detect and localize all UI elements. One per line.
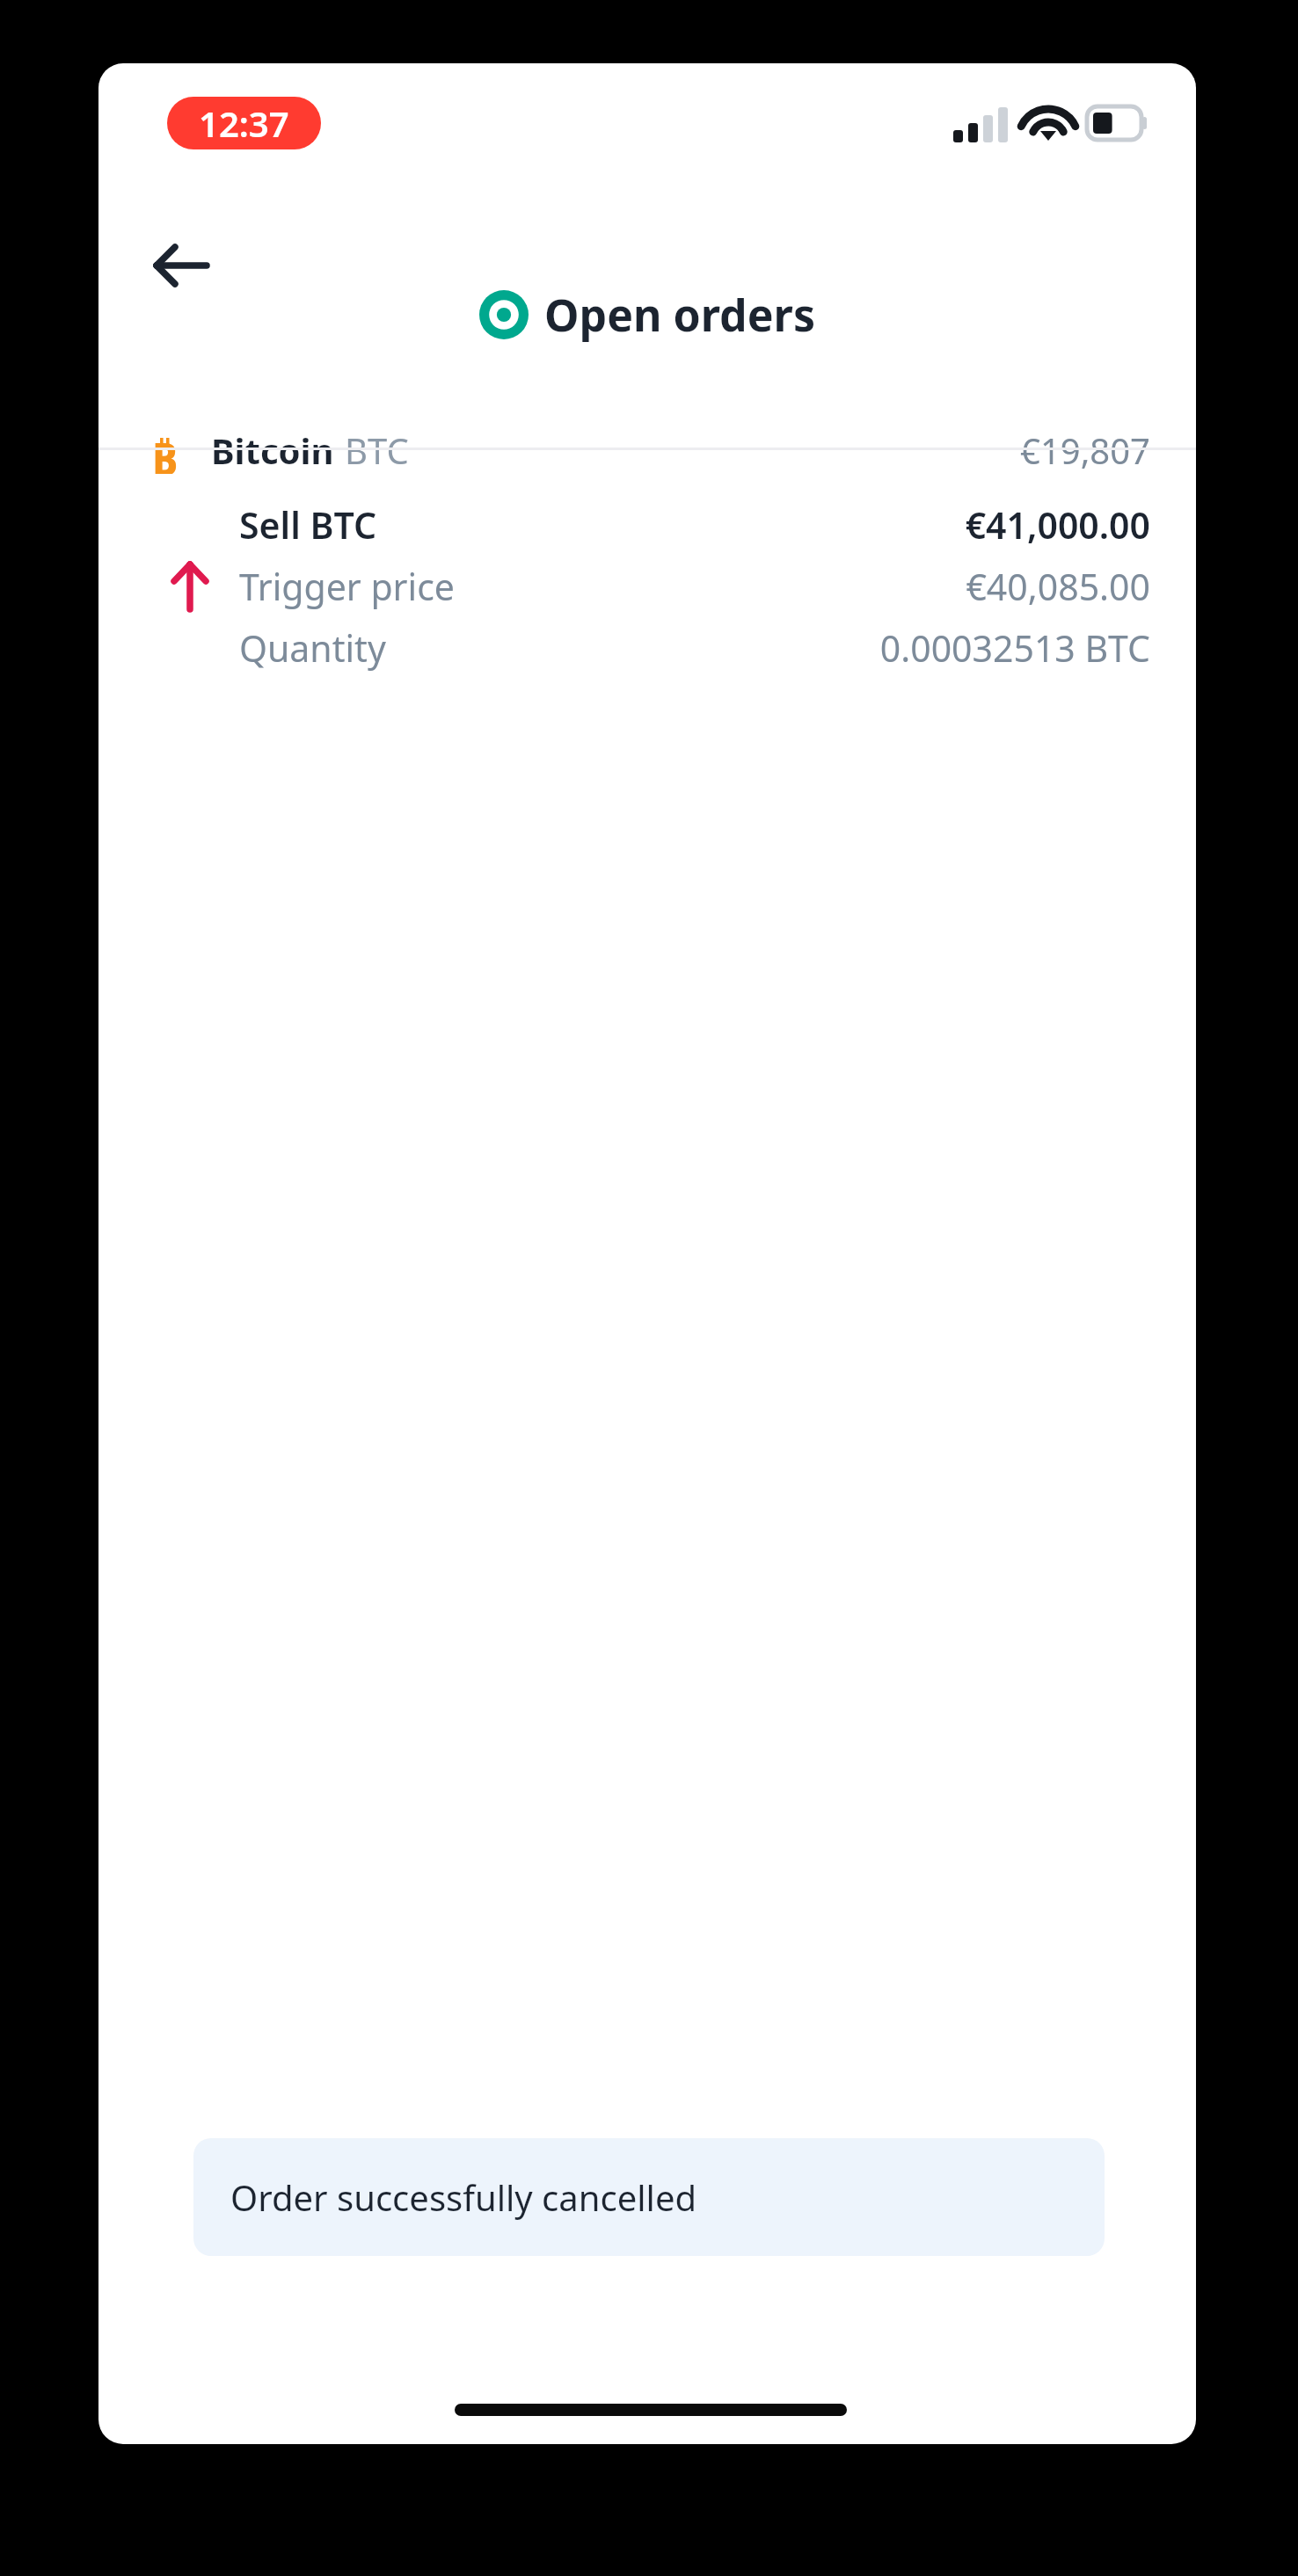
button[interactable]: Back bbox=[137, 222, 225, 309]
staticText: Order successfully cancelled bbox=[230, 2173, 697, 2221]
staticText: Sell BTC bbox=[239, 500, 377, 549]
staticText: 0.00032513 BTC bbox=[879, 623, 1150, 673]
button[interactable]: Sell BTC bbox=[98, 481, 1196, 692]
staticText: €40,085.00 bbox=[966, 562, 1150, 611]
staticText: Quantity bbox=[239, 623, 386, 673]
staticText: Open orders bbox=[544, 285, 815, 345]
staticText: Trigger price bbox=[239, 562, 455, 611]
staticText: €41,000.00 bbox=[965, 500, 1150, 549]
staticText: ₿ bbox=[151, 426, 178, 474]
staticText: Bitcoin bbox=[211, 426, 334, 474]
staticText: €19,807 bbox=[1020, 426, 1150, 474]
button[interactable]: ₿ bbox=[98, 408, 1196, 492]
staticText: BTC bbox=[345, 426, 409, 474]
button[interactable]: Order successfully cancelled bbox=[193, 2138, 1105, 2256]
staticText: 12:37 bbox=[199, 99, 289, 147]
